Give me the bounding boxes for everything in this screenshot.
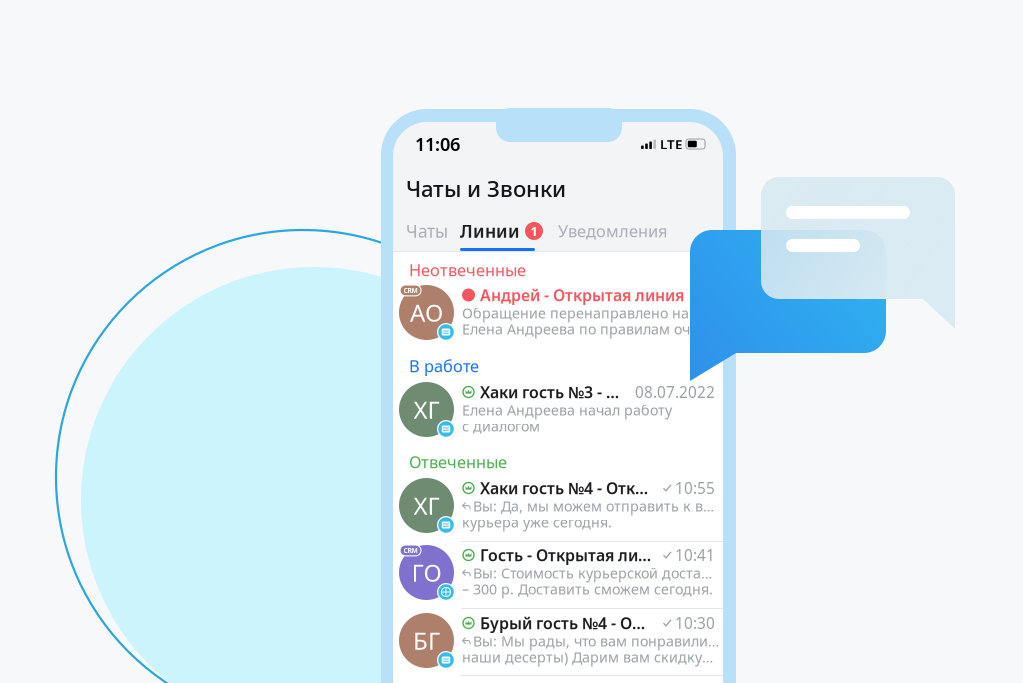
staticText: Елена Андреева начал работу — [462, 400, 672, 419]
staticText: ГО — [411, 557, 441, 588]
staticText: 1 — [530, 223, 537, 239]
button[interactable]: ГО — [393, 539, 723, 605]
staticText: ХГ — [413, 490, 439, 521]
staticText: Обращение перенаправлено на — [462, 303, 689, 322]
staticText: Елена Андреева по правилам оч... — [462, 319, 702, 338]
staticText: ХГ — [413, 394, 439, 425]
staticText: LTE — [660, 135, 682, 153]
staticText: БГ — [413, 625, 440, 656]
staticText: Чаты — [406, 219, 448, 242]
staticText: наши десерты) Дарим вам скидку 20... — [462, 647, 715, 666]
staticText: CRM — [403, 546, 417, 555]
staticText: 11:06 — [415, 132, 460, 156]
staticText: курьера уже сегодня. — [462, 512, 612, 531]
button[interactable]: АО — [393, 279, 723, 345]
staticText: Чаты и Звонки — [406, 174, 566, 203]
staticText: Вы: Мы рады, что вам понравились — [473, 631, 719, 650]
button[interactable]: Уведомления — [548, 211, 677, 251]
staticText: Неотвеченные — [409, 259, 526, 281]
staticText: Хаки гость №3 - Откры... — [480, 381, 623, 403]
staticText: Андрей - Открытая линия — [480, 284, 684, 306]
staticText: 10:41 — [675, 545, 715, 565]
staticText: 08.07.2022 — [635, 382, 715, 402]
staticText: 10:55 — [675, 478, 715, 498]
staticText: Вы: Да, мы можем отправить к вам — [473, 496, 719, 515]
staticText: Уведомления — [558, 220, 667, 242]
button[interactable]: Линии — [453, 211, 548, 251]
staticText: Гость - Открытая линия — [480, 544, 651, 566]
staticText: Бурый гость №4 - Откры... — [480, 612, 651, 634]
staticText: Хаки гость №4 - Открыт... — [480, 477, 651, 499]
staticText: 10:30 — [675, 613, 715, 633]
button[interactable]: ХГ — [393, 376, 723, 442]
staticText: Линии — [460, 219, 520, 243]
staticText: Отвеченные — [409, 451, 507, 473]
staticText: с диалогом — [462, 416, 540, 435]
staticText: В работе — [409, 355, 479, 377]
staticText: – 300 р. Доставить сможем сегодня. — [462, 579, 713, 598]
button[interactable]: ХГ — [393, 472, 723, 538]
button[interactable]: БГ — [393, 607, 723, 673]
staticText: Вы: Стоимость курьерской доставки — [473, 563, 719, 582]
staticText: CRM — [403, 286, 417, 295]
button[interactable]: Чаты — [393, 211, 453, 251]
staticText: АО — [410, 297, 443, 328]
